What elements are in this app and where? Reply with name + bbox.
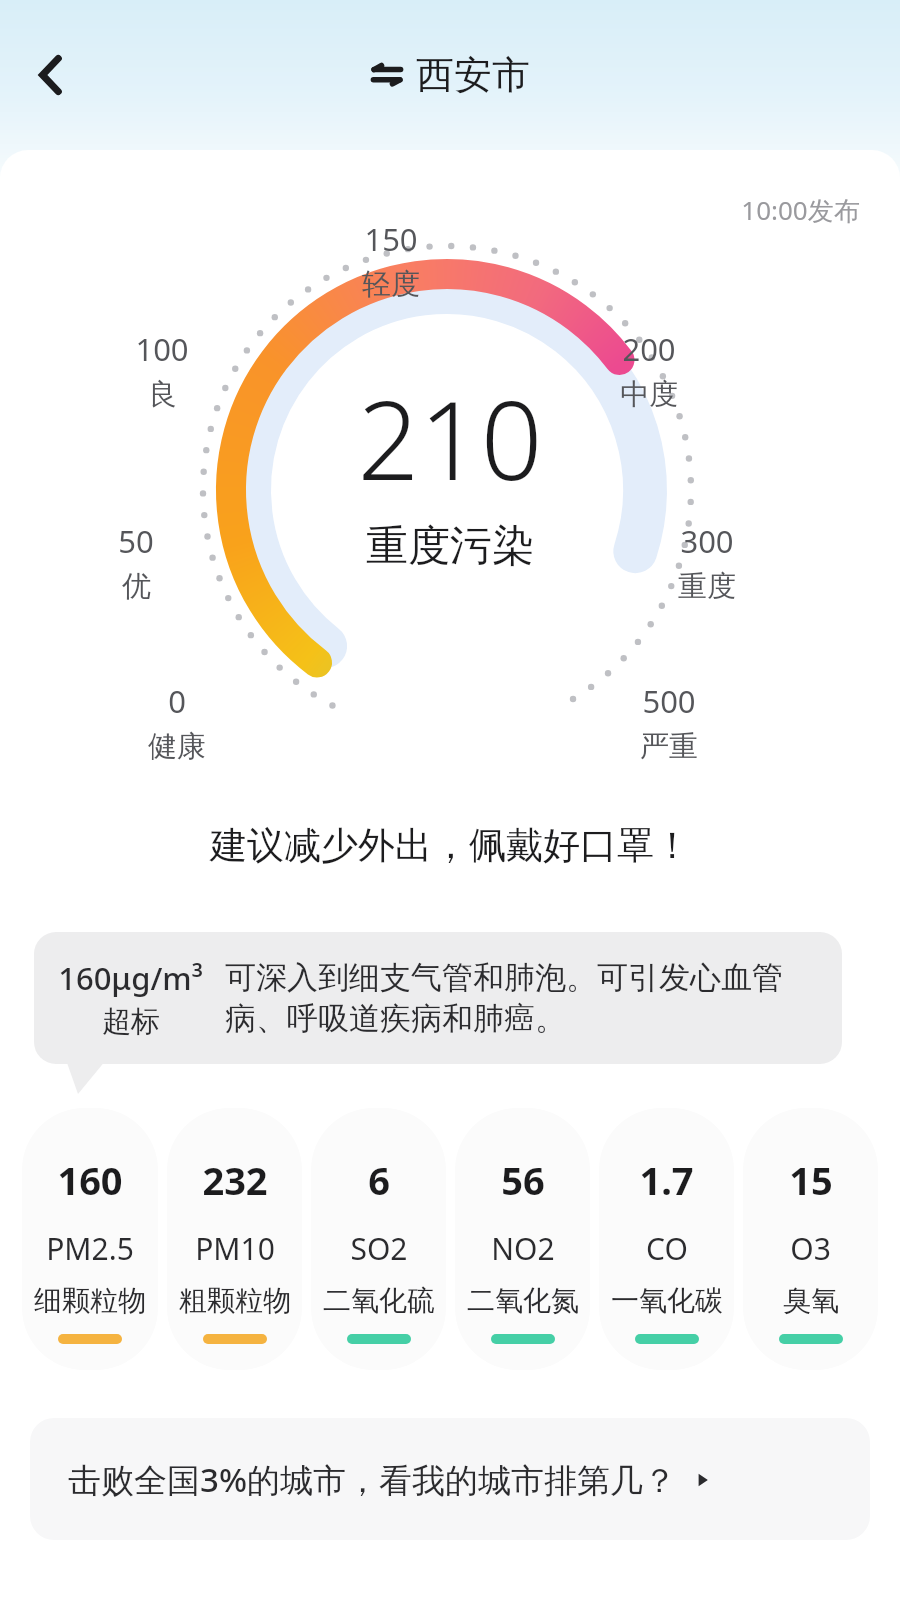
- staticText: 232: [202, 1154, 268, 1206]
- staticText: 粗颗粒物: [179, 1283, 291, 1318]
- button[interactable]: 160: [22, 1108, 158, 1370]
- staticText: 15: [789, 1154, 833, 1206]
- staticText: 6: [368, 1154, 390, 1206]
- staticText: 100: [135, 328, 189, 370]
- staticText: SO2: [350, 1228, 408, 1269]
- staticText: 300: [680, 520, 734, 562]
- staticText: 健康: [148, 728, 206, 765]
- staticText: 轻度: [362, 266, 420, 303]
- button[interactable]: 6: [311, 1108, 446, 1370]
- staticText: 一氧化碳: [611, 1283, 723, 1318]
- staticText: 良: [148, 376, 177, 413]
- staticText: 50: [118, 520, 154, 562]
- staticText: 细颗粒物: [34, 1283, 146, 1318]
- button[interactable]: 15: [743, 1108, 878, 1370]
- staticText: 建议减少外出，佩戴好口罩！: [210, 822, 691, 869]
- staticText: 150: [364, 218, 418, 260]
- staticText: O3: [790, 1228, 831, 1269]
- button[interactable]: 西安市: [370, 51, 530, 99]
- staticText: 臭氧: [783, 1283, 839, 1318]
- staticText: 200: [622, 328, 676, 370]
- button[interactable]: 1.7: [599, 1108, 734, 1370]
- staticText: 500: [642, 680, 696, 722]
- staticText: 击败全国3%的城市，看我的城市排第几？: [68, 1457, 676, 1502]
- staticText: 10:00发布: [741, 192, 860, 228]
- staticText: 210: [357, 365, 543, 512]
- button[interactable]: 击败全国3%的城市，看我的城市排第几？: [30, 1418, 870, 1540]
- staticText: PM2.5: [46, 1228, 134, 1269]
- staticText: 重度污染: [366, 520, 534, 573]
- staticText: 中度: [620, 376, 678, 413]
- staticText: 可深入到细支气管和肺泡。可引发心血管病、呼吸道疾病和肺癌。: [225, 958, 824, 1038]
- staticText: 160: [57, 1154, 123, 1206]
- staticText: PM10: [195, 1228, 275, 1269]
- staticText: 超标: [102, 1003, 160, 1040]
- staticText: 0: [168, 680, 186, 722]
- staticText: 优: [122, 568, 151, 605]
- staticText: 严重: [640, 728, 698, 765]
- button[interactable]: 56: [455, 1108, 590, 1370]
- staticText: 二氧化硫: [323, 1283, 435, 1318]
- staticText: 西安市: [416, 51, 530, 99]
- button[interactable]: 232: [167, 1108, 302, 1370]
- staticText: 重度: [678, 568, 736, 605]
- button[interactable]: Back: [18, 39, 90, 111]
- staticText: NO2: [491, 1228, 555, 1269]
- staticText: 1.7: [639, 1154, 694, 1206]
- staticText: 160μg/m³: [58, 957, 203, 999]
- staticText: 56: [501, 1154, 545, 1206]
- staticText: 二氧化氮: [467, 1283, 579, 1318]
- staticText: CO: [646, 1228, 688, 1269]
